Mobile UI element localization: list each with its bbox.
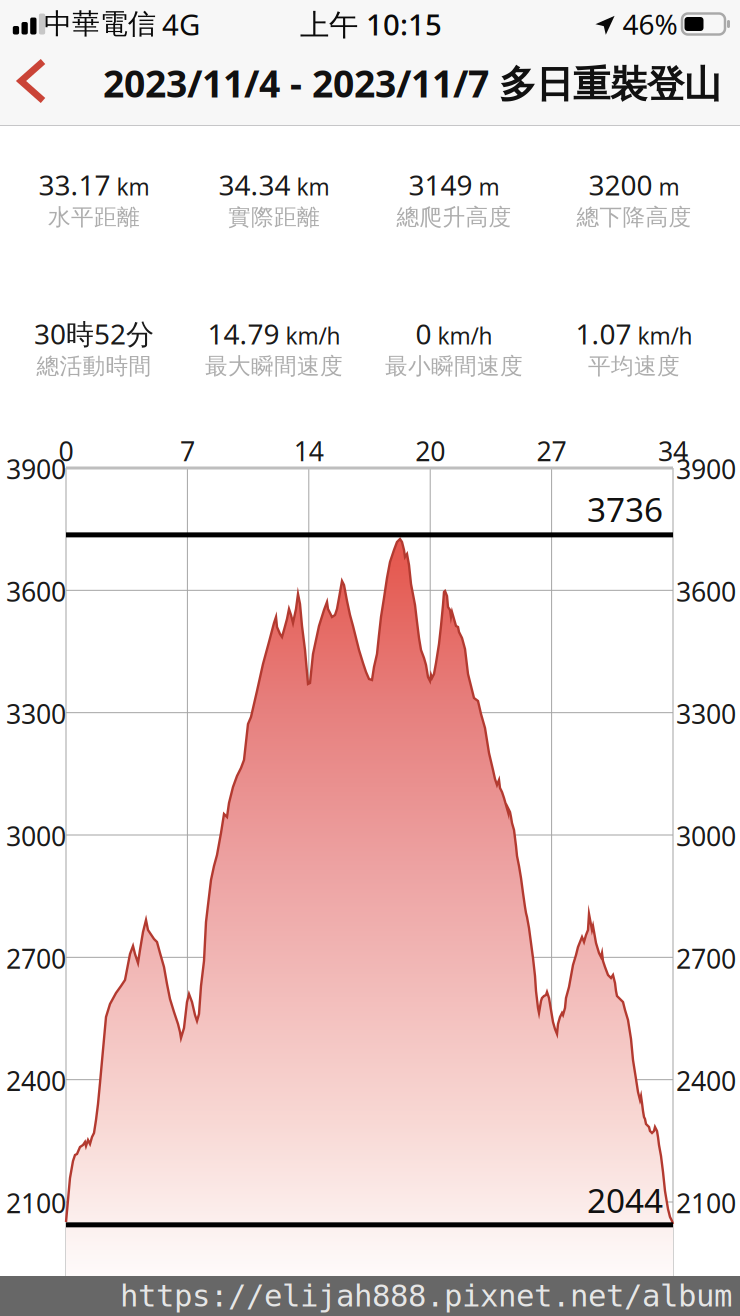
staticText: 3600 xyxy=(676,574,736,609)
staticText: 27 xyxy=(537,433,567,469)
staticText: 2100 xyxy=(676,1185,736,1221)
staticText: 3300 xyxy=(6,696,66,731)
staticText: 最大瞬間速度 xyxy=(205,352,343,380)
staticText: 最小瞬間速度 xyxy=(385,352,523,380)
staticText: 14.79 xyxy=(207,315,279,352)
staticText: 總爬升高度 xyxy=(396,203,511,231)
staticText: 30時52分 xyxy=(34,315,154,352)
staticText: 3736 xyxy=(587,487,663,531)
staticText: https://elijah888.pixnet.net/album xyxy=(120,1279,732,1313)
staticText: 2400 xyxy=(676,1063,736,1098)
staticText: 3900 xyxy=(676,451,736,487)
button[interactable]: Back xyxy=(0,41,66,120)
staticText: 4G xyxy=(162,4,200,43)
staticText: 0 xyxy=(58,433,73,469)
staticText: 33.17 xyxy=(38,166,110,203)
staticText: 0 xyxy=(415,315,431,352)
staticText: 7 xyxy=(180,433,195,469)
staticText: km/h xyxy=(437,321,492,351)
staticText: km/h xyxy=(637,321,692,351)
staticText: 46% xyxy=(622,5,677,43)
staticText: 3149 xyxy=(408,166,472,203)
staticText: 平均速度 xyxy=(588,352,680,380)
staticText: m xyxy=(478,172,499,202)
staticText: 3200 xyxy=(588,166,652,203)
staticText: 2023/11/4 - 2023/11/7 多日重裝登山 xyxy=(103,58,721,108)
staticText: 3000 xyxy=(6,818,66,854)
staticText: 34 xyxy=(658,433,688,469)
staticText: km xyxy=(116,172,149,202)
staticText: 水平距離 xyxy=(48,203,140,231)
staticText: 總下降高度 xyxy=(576,203,691,231)
staticText: 上午 10:15 xyxy=(300,4,442,43)
staticText: km xyxy=(296,172,329,202)
staticText: 3900 xyxy=(6,451,66,487)
staticText: 總活動時間 xyxy=(36,352,151,380)
staticText: 3000 xyxy=(676,818,736,854)
staticText: 中華電信 xyxy=(44,7,156,41)
staticText: 2400 xyxy=(6,1063,66,1098)
staticText: m xyxy=(658,172,679,202)
staticText: 2100 xyxy=(6,1185,66,1221)
staticText: 2700 xyxy=(676,941,736,976)
staticText: 3600 xyxy=(6,574,66,609)
staticText: 1.07 xyxy=(575,315,631,352)
staticText: 3300 xyxy=(676,696,736,731)
staticText: 34.34 xyxy=(218,166,290,203)
staticText: 14 xyxy=(294,433,324,469)
staticText: 實際距離 xyxy=(228,203,320,231)
staticText: 2700 xyxy=(6,941,66,976)
staticText: 20 xyxy=(415,433,445,469)
staticText: 2044 xyxy=(587,1178,663,1222)
staticText: km/h xyxy=(285,321,340,351)
